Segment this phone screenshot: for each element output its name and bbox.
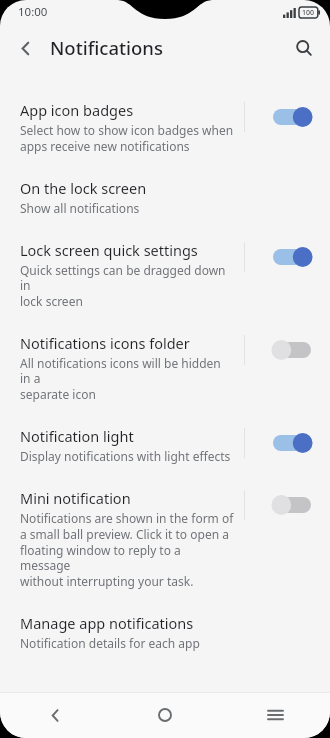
staticText: floating window to reply to a message — [20, 542, 234, 573]
button[interactable]: Toggle on — [270, 428, 314, 458]
staticText: App icon badges — [20, 100, 134, 120]
staticText: All notifications icons will be hidden i… — [20, 355, 234, 386]
button[interactable]: Back — [0, 692, 110, 738]
button[interactable]: Toggle off — [270, 335, 314, 365]
button[interactable]: App icon badges — [0, 88, 330, 166]
staticText: without interrupting your task. — [20, 573, 194, 589]
staticText: 10:00 — [18, 4, 48, 20]
button[interactable]: Back — [6, 29, 44, 67]
staticText: apps receive new notifications — [20, 138, 190, 154]
staticText: Lock screen quick settings — [20, 240, 198, 260]
button[interactable]: Toggle on — [270, 242, 314, 272]
staticText: Display notifications with light effects — [20, 448, 231, 464]
staticText: Show all notifications — [20, 200, 140, 216]
button[interactable]: Recents — [220, 692, 330, 738]
staticText: Select how to show icon badges when — [20, 122, 234, 138]
staticText: Quick settings can be dragged down in — [20, 262, 234, 293]
button[interactable]: Notification light — [0, 414, 330, 476]
staticText: lock screen — [20, 293, 83, 309]
staticText: Notifications — [50, 35, 163, 60]
button[interactable]: Manage app notifications — [0, 601, 330, 663]
button[interactable]: Lock screen quick settings — [0, 228, 330, 321]
button[interactable]: Toggle off — [270, 490, 314, 520]
button[interactable]: Mini notification — [0, 476, 330, 601]
staticText: Notifications icons folder — [20, 333, 190, 353]
button[interactable]: Notifications icons folder — [0, 321, 330, 414]
staticText: a small ball preview. Click it to open a — [20, 526, 229, 542]
button[interactable]: Toggle on — [270, 102, 314, 132]
staticText: Notification light — [20, 426, 134, 446]
staticText: Notification details for each app — [20, 635, 200, 651]
button[interactable]: Home — [110, 692, 220, 738]
staticText: On the lock screen — [20, 178, 147, 198]
staticText: 100 — [302, 8, 315, 18]
button[interactable]: Search — [285, 29, 323, 67]
button[interactable]: On the lock screen — [0, 166, 330, 228]
staticText: Mini notification — [20, 488, 131, 508]
staticText: Notifications are shown in the form of — [20, 510, 234, 526]
staticText: separate icon — [20, 386, 96, 402]
staticText: Manage app notifications — [20, 613, 194, 633]
